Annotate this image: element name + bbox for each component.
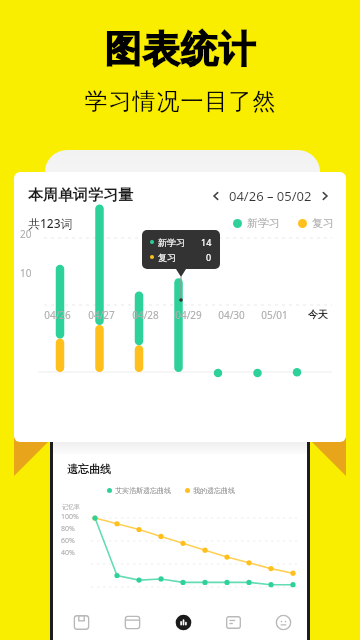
staticText: 复习 — [158, 252, 176, 263]
button[interactable]: Calendar — [107, 604, 158, 640]
staticText: 04/26 — [44, 308, 71, 322]
staticText: 40% — [61, 548, 75, 558]
staticText: 04/26 – 05/02 — [229, 187, 312, 205]
staticText: 60% — [61, 536, 75, 546]
staticText: 10 — [20, 266, 32, 280]
staticText: 04/29 — [175, 308, 202, 322]
staticText: 04/28 — [132, 308, 159, 322]
button[interactable]: Statistics — [158, 604, 208, 640]
staticText: 共123词 — [28, 215, 73, 231]
staticText: 我的遗忘曲线 — [193, 486, 235, 495]
staticText: 记忆率 — [62, 503, 80, 511]
staticText: 新学习 — [158, 237, 185, 248]
staticText: 0 — [206, 251, 212, 263]
staticText: 05/01 — [261, 308, 288, 322]
staticText: 学习情况一目了然 — [84, 87, 276, 116]
staticText: 04/27 — [88, 308, 115, 322]
staticText: 14 — [201, 236, 212, 248]
staticText: 图表统计 — [104, 26, 256, 73]
staticText: 20 — [20, 227, 32, 241]
staticText: 100% — [61, 512, 79, 522]
staticText: 80% — [61, 524, 75, 534]
button[interactable]: Profile — [258, 604, 308, 640]
staticText: 新学习 — [247, 216, 280, 230]
staticText: 04/30 — [218, 308, 245, 322]
button[interactable]: Next week — [316, 187, 334, 205]
button[interactable]: Previous week — [207, 187, 225, 205]
button[interactable]: Word book — [56, 604, 107, 640]
staticText: 今天 — [308, 308, 328, 321]
staticText: 遗忘曲线 — [67, 462, 111, 476]
staticText: 复习 — [312, 216, 334, 230]
staticText: 本周单词学习量 — [28, 186, 133, 205]
staticText: 艾宾浩斯遗忘曲线 — [115, 486, 171, 495]
button[interactable]: Notes — [208, 604, 258, 640]
